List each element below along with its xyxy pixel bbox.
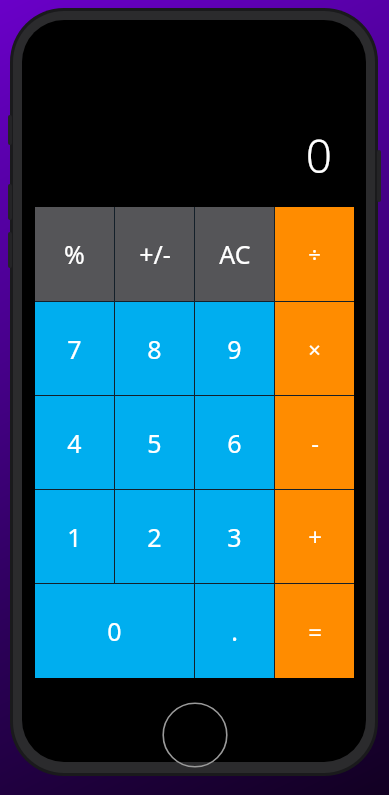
staticText: 4 — [67, 426, 82, 460]
button[interactable]: 3 — [195, 490, 274, 583]
button[interactable]: 9 — [195, 302, 274, 395]
staticText: AC — [219, 237, 251, 271]
button[interactable]: Home — [162, 702, 228, 768]
button[interactable]: % — [35, 207, 114, 301]
staticText: . — [231, 614, 238, 648]
staticText: 9 — [227, 332, 242, 366]
staticText: 8 — [147, 332, 162, 366]
staticText: ÷ — [308, 239, 321, 269]
staticText: = — [308, 615, 322, 648]
button[interactable]: 5 — [115, 396, 194, 489]
button[interactable]: 2 — [115, 490, 194, 583]
button[interactable]: ÷ — [275, 207, 354, 301]
button[interactable]: = — [275, 584, 354, 678]
button[interactable]: 1 — [35, 490, 114, 583]
staticText: × — [308, 334, 321, 364]
button[interactable]: 8 — [115, 302, 194, 395]
staticText: 1 — [67, 520, 82, 554]
staticText: - — [311, 426, 319, 459]
button[interactable]: 0 — [35, 584, 194, 678]
staticText: 3 — [227, 520, 242, 554]
staticText: 0 — [107, 614, 122, 648]
button[interactable]: - — [275, 396, 354, 489]
staticText: 0 — [305, 124, 332, 187]
button[interactable]: 6 — [195, 396, 274, 489]
staticText: 6 — [227, 426, 242, 460]
staticText: +/- — [139, 237, 171, 271]
button[interactable]: +/- — [115, 207, 194, 301]
button[interactable]: 7 — [35, 302, 114, 395]
staticText: 7 — [67, 332, 82, 366]
button[interactable]: AC — [195, 207, 274, 301]
button[interactable]: 4 — [35, 396, 114, 489]
staticText: 2 — [147, 520, 162, 554]
staticText: 5 — [147, 426, 162, 460]
button[interactable]: . — [195, 584, 274, 678]
staticText: % — [64, 237, 85, 271]
button[interactable]: × — [275, 302, 354, 395]
staticText: + — [308, 520, 322, 553]
button[interactable]: + — [275, 490, 354, 583]
